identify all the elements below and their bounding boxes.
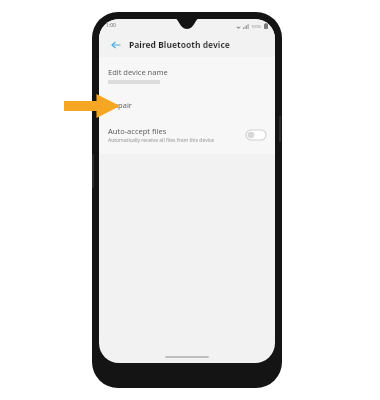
button[interactable]: Unpair: [99, 92, 275, 120]
staticText: Paired Bluetooth device: [129, 39, 230, 51]
button[interactable]: Edit device name: [99, 57, 275, 92]
button[interactable]: Back: [108, 37, 124, 53]
button[interactable]: Auto-accept files: [99, 120, 275, 154]
other: Pointer to Unpair: [64, 94, 120, 118]
staticText: Auto-accept files: [108, 126, 167, 136]
staticText: Unpair: [108, 100, 132, 110]
staticText: 100%: [251, 24, 262, 29]
staticText: Automatically receive all files from thi…: [108, 137, 215, 144]
button[interactable]: Auto-accept files toggle: [246, 130, 266, 140]
staticText: Edit device name: [108, 67, 168, 77]
staticText: 1:00: [106, 22, 116, 29]
